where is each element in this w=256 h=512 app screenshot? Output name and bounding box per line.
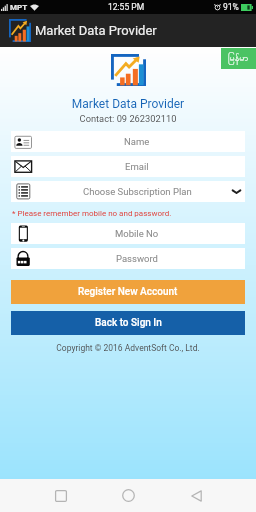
button[interactable]: Home	[109, 479, 147, 512]
button[interactable]: Recent apps	[42, 479, 79, 512]
staticText: Market Data Provider	[0, 97, 256, 111]
staticText: Name	[124, 136, 150, 147]
staticText: * Please remember mobile no and password…	[12, 209, 172, 218]
staticText: Mobile No	[115, 228, 159, 239]
staticText: 12:55 PM	[108, 2, 145, 12]
button[interactable]: Mobile No	[11, 223, 245, 244]
staticText: MPT	[10, 3, 28, 12]
staticText: Copyright © 2016 AdventSoft Co., Ltd.	[0, 343, 256, 353]
button[interactable]: မြန်မာ	[221, 48, 256, 69]
button[interactable]: Email	[11, 156, 245, 177]
staticText: Back to Sign In	[95, 317, 162, 329]
staticText: Choose Subscription Plan	[83, 186, 192, 197]
staticText: Market Data Provider	[35, 23, 157, 38]
button[interactable]: Back	[178, 479, 215, 512]
button[interactable]: Name	[11, 131, 245, 152]
button[interactable]: Choose Subscription Plan	[11, 181, 245, 202]
staticText: Email	[125, 161, 149, 172]
staticText: Register New Account	[78, 286, 178, 298]
button[interactable]: Register New Account	[11, 280, 245, 304]
button[interactable]: Password	[11, 248, 245, 269]
staticText: မြန်မာ	[228, 52, 249, 65]
button[interactable]: Back to Sign In	[11, 311, 245, 335]
staticText: Password	[116, 253, 158, 264]
staticText: 91%	[223, 2, 239, 12]
staticText: Contact: 09 262302110	[0, 113, 256, 124]
